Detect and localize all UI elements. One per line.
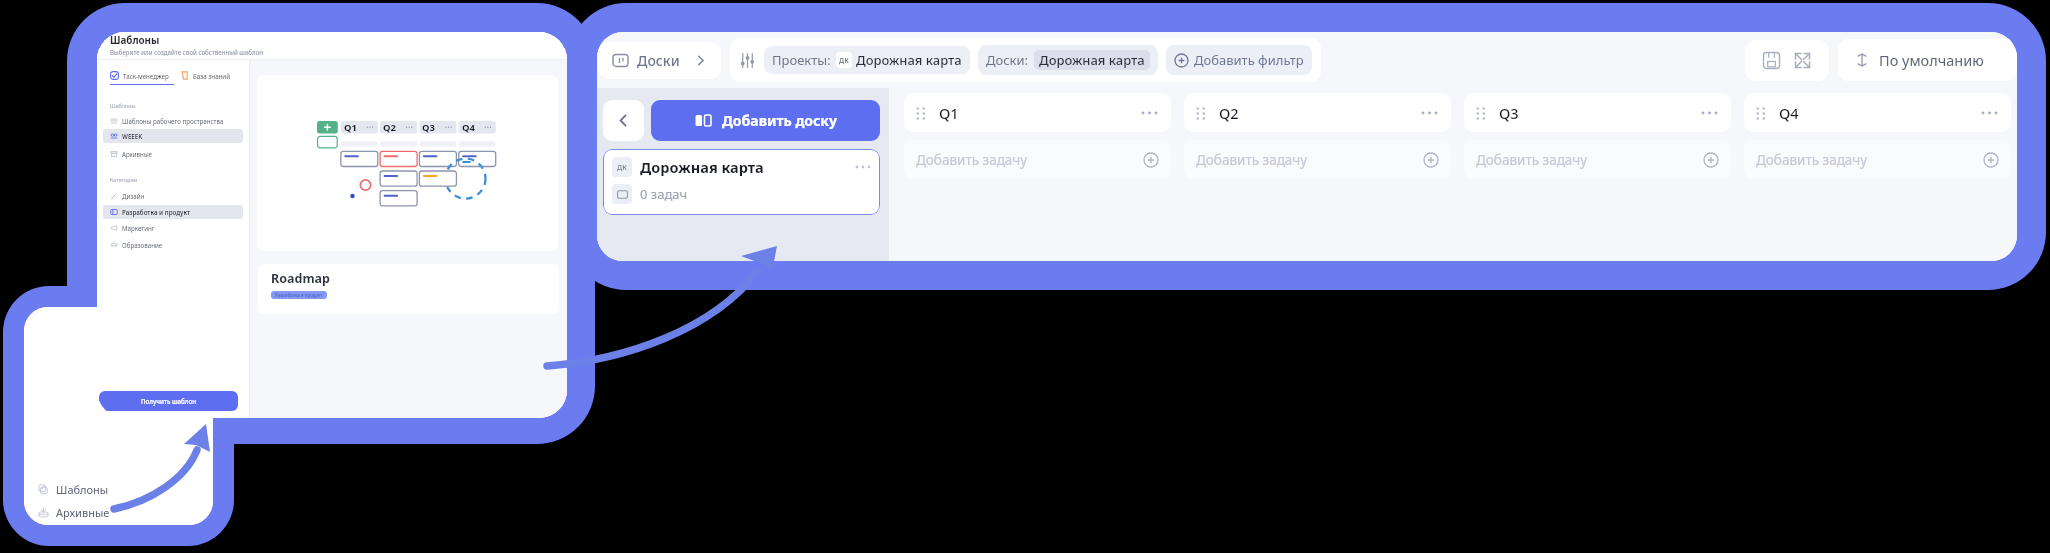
staticText: дк [839, 54, 849, 66]
button[interactable]: Добавить задачу [1464, 140, 1731, 179]
staticText: Добавить доску [722, 111, 837, 130]
staticText: Q3 [422, 121, 435, 133]
staticText: Q4 [1779, 103, 1799, 123]
staticText: Q4 [462, 121, 475, 133]
staticText: Дорожная карта [640, 157, 764, 177]
staticText: Таск-менеджер [123, 72, 169, 80]
button[interactable]: Добавить задачу [1184, 140, 1451, 179]
button[interactable]: Архивные [103, 147, 243, 161]
staticText: Проекты: [772, 51, 831, 69]
button[interactable]: Архивные [38, 503, 110, 522]
staticText: Доски [637, 51, 680, 70]
staticText: Добавить задачу [1756, 151, 1868, 169]
staticText: Шаблоны [110, 34, 160, 47]
staticText: Дизайн [122, 192, 145, 200]
staticText: Q3 [1499, 103, 1519, 123]
staticText: Шаблоны [110, 102, 136, 109]
button[interactable]: Q1 [904, 93, 1171, 132]
button[interactable]: WEEEK [103, 129, 243, 143]
staticText: Выберите или создайте свой собственный ш… [110, 48, 264, 56]
staticText: Категории [110, 176, 138, 183]
button[interactable]: дк [603, 149, 880, 215]
staticText: Roadmap [271, 270, 330, 287]
button[interactable]: Дизайн [103, 189, 243, 203]
button[interactable]: Таск-менеджер [110, 71, 169, 80]
button[interactable]: Добавить задачу [1744, 140, 2011, 179]
staticText: Шаблоны [56, 482, 109, 497]
staticText: Добавить задачу [1196, 151, 1308, 169]
button[interactable]: Q2 [1184, 93, 1451, 132]
button[interactable]: Шаблоны [38, 480, 109, 499]
staticText: Разработка и продукт [275, 292, 323, 298]
button[interactable]: Q4 [1744, 93, 2011, 132]
button[interactable]: Развернуть [1793, 51, 1812, 70]
button[interactable]: По умолчанию [1838, 39, 2017, 81]
staticText: дк [617, 161, 627, 173]
staticText: Q2 [1219, 103, 1239, 123]
button[interactable]: Получить шаблон [99, 391, 238, 411]
button[interactable]: Q1 [257, 75, 558, 251]
staticText: Дорожная карта [1039, 51, 1145, 69]
staticText: Добавить задачу [1476, 151, 1588, 169]
button[interactable]: Roadmap [258, 264, 559, 314]
staticText: Шаблоны рабочего пространства [122, 117, 224, 125]
button[interactable]: Шаблоны рабочего пространства [103, 114, 243, 128]
staticText: Добавить задачу [916, 151, 1028, 169]
staticText: Получить шаблон [141, 397, 197, 405]
button[interactable]: База знаний [180, 71, 231, 80]
button[interactable]: Доски [598, 42, 721, 79]
button[interactable]: Добавить фильтр [1166, 45, 1312, 75]
button[interactable]: Доски: [978, 45, 1158, 75]
staticText: Q2 [383, 121, 396, 133]
staticText: Маркетинг [122, 224, 155, 232]
button[interactable]: Добавить задачу [904, 140, 1171, 179]
staticText: Разработка и продукт [122, 208, 191, 216]
button[interactable]: Образование [103, 238, 243, 252]
button[interactable]: Маркетинг [103, 221, 243, 235]
staticText: База знаний [193, 72, 231, 80]
staticText: 0 задач [640, 185, 688, 203]
staticText: Архивные [56, 505, 110, 520]
staticText: Архивные [122, 150, 152, 158]
button[interactable]: Проекты: [764, 46, 970, 74]
button[interactable]: Разработка и продукт [103, 205, 243, 219]
button[interactable]: Добавить доску [651, 100, 880, 141]
button[interactable]: Сохранить [1762, 51, 1781, 70]
staticText: По умолчанию [1879, 50, 1984, 70]
staticText: Добавить фильтр [1194, 51, 1304, 69]
button[interactable]: Q3 [1464, 93, 1731, 132]
staticText: WEEEK [122, 132, 143, 140]
staticText: Дорожная карта [856, 51, 962, 69]
button[interactable]: Назад [603, 100, 644, 141]
staticText: Доски: [986, 51, 1029, 69]
staticText: Q1 [939, 103, 959, 123]
staticText: Образование [122, 241, 163, 249]
staticText: Q1 [344, 121, 357, 133]
